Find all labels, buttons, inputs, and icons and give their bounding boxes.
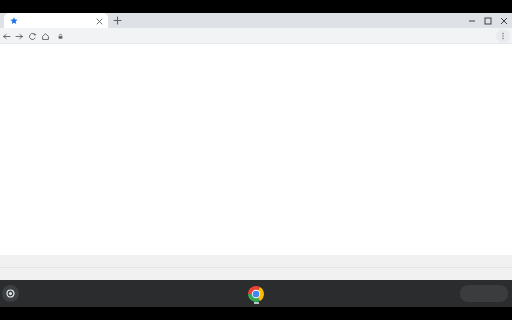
button[interactable]: Chrome	[246, 284, 266, 304]
button[interactable]: System status	[460, 285, 508, 302]
button[interactable]: Forward	[13, 28, 26, 44]
button[interactable]: More options	[496, 29, 510, 43]
button[interactable]: Minimize	[464, 13, 480, 28]
button[interactable]: Back	[0, 28, 13, 44]
button[interactable]: New tab	[110, 13, 124, 28]
button[interactable]: Launcher	[2, 285, 19, 302]
button[interactable]: Close window	[496, 13, 512, 28]
button[interactable]: Maximize	[480, 13, 496, 28]
button[interactable]: Home	[39, 28, 52, 44]
button[interactable]: Reload	[26, 28, 39, 44]
button[interactable]: Close tab	[4, 13, 108, 28]
button[interactable]: Close tab	[94, 16, 104, 26]
button[interactable]	[54, 31, 493, 42]
